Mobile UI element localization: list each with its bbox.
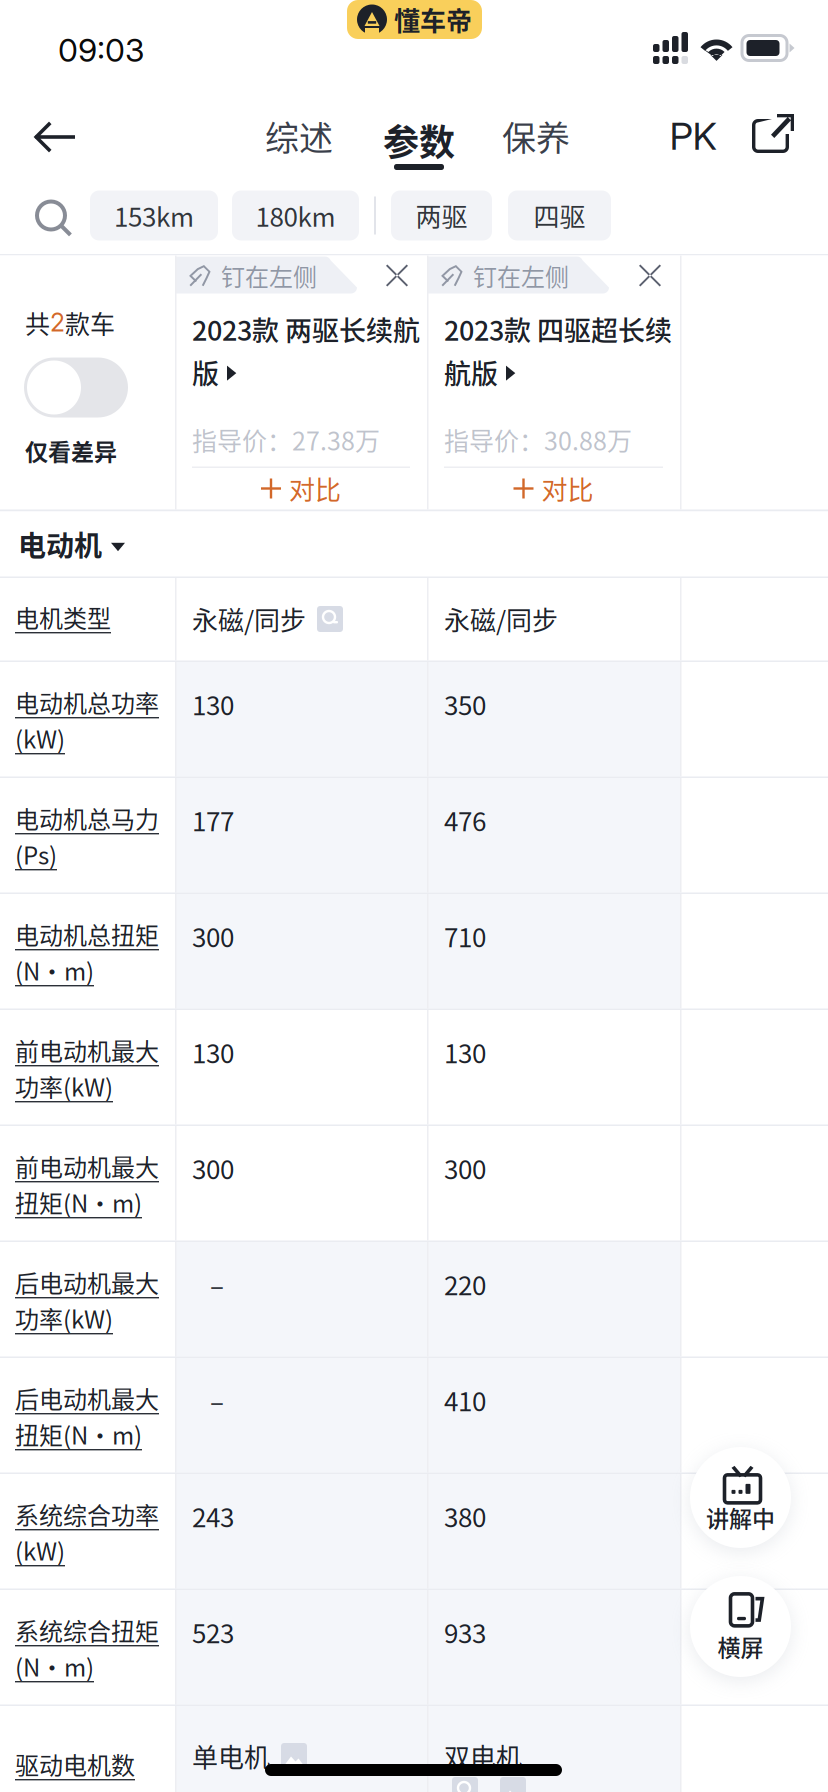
staticText: 476 xyxy=(444,801,486,839)
staticText: 钉在左侧 xyxy=(473,258,569,293)
staticText: 2 xyxy=(50,307,65,338)
staticText: 后电动机最大 xyxy=(15,1265,159,1299)
button[interactable]: 保养 xyxy=(486,95,586,177)
staticText: 243 xyxy=(192,1497,234,1535)
staticText: 驱动电机数 xyxy=(15,1747,135,1781)
staticText: 横屏 xyxy=(717,1630,763,1663)
staticText: 共 xyxy=(25,304,50,341)
staticText: 710 xyxy=(444,917,486,955)
staticText: 电动机总马力 xyxy=(15,801,159,835)
button[interactable]: 180km xyxy=(232,190,359,240)
staticText: 300 xyxy=(444,1149,486,1187)
button[interactable]: 四驱 xyxy=(508,190,611,240)
staticText: 扭矩(N·m) xyxy=(15,1185,142,1219)
staticText: 380 xyxy=(444,1497,486,1535)
staticText: 后电动机最大 xyxy=(15,1381,159,1415)
button[interactable]: 返回 xyxy=(9,96,101,178)
staticText: 仅看差异 xyxy=(25,434,117,467)
staticText: 前电动机最大 xyxy=(15,1149,159,1183)
button[interactable]: 横屏 xyxy=(690,1576,791,1677)
staticText: 双电机 xyxy=(444,1737,522,1775)
staticText: 功率(kW) xyxy=(15,1301,113,1335)
staticText: 钉在左侧 xyxy=(221,258,317,293)
button[interactable]: 移除该车型 xyxy=(628,255,672,295)
button[interactable]: 仅看差异 xyxy=(24,357,128,417)
button[interactable]: 参数 xyxy=(364,95,474,177)
staticText: 130 xyxy=(192,1033,234,1071)
staticText: 系统综合功率 xyxy=(15,1497,159,1531)
staticText: 410 xyxy=(444,1381,486,1419)
staticText: 单电机 xyxy=(192,1737,270,1775)
staticText: 180km xyxy=(255,197,335,234)
staticText: 300 xyxy=(192,1149,234,1187)
staticText: 讲解中 xyxy=(706,1501,775,1534)
staticText: 153km xyxy=(114,197,194,234)
staticText: (N·m) xyxy=(15,953,94,987)
staticText: – xyxy=(210,1381,224,1419)
button[interactable]: 讲解中 xyxy=(690,1447,791,1548)
staticText: 130 xyxy=(192,685,234,723)
staticText: 电动机总功率 xyxy=(15,685,159,719)
staticText: 永磁/同步 xyxy=(444,600,558,638)
staticText: 300 xyxy=(192,917,234,955)
staticText: (kW) xyxy=(15,721,65,755)
button[interactable]: 分享 xyxy=(730,95,812,177)
button[interactable]: 153km xyxy=(90,190,218,240)
staticText: 350 xyxy=(444,685,486,723)
staticText: 系统综合扭矩 xyxy=(15,1613,159,1647)
staticText: 懂车帝 xyxy=(394,1,472,38)
staticText: PK xyxy=(669,113,716,159)
staticText: (Ps) xyxy=(15,837,57,871)
staticText: 电机类型 xyxy=(15,600,111,634)
staticText: 2023款 四驱超长续 xyxy=(444,309,672,349)
staticText: 四驱 xyxy=(533,197,585,234)
staticText: 版 xyxy=(192,353,219,392)
staticText: 保养 xyxy=(502,111,570,161)
staticText: 130 xyxy=(444,1033,486,1071)
staticText: 933 xyxy=(444,1613,486,1651)
staticText: 177 xyxy=(192,801,234,839)
staticText: 永磁/同步 xyxy=(192,600,306,638)
staticText: 航版 xyxy=(444,353,498,392)
staticText: 前电动机最大 xyxy=(15,1033,159,1067)
staticText: 功率(kW) xyxy=(15,1069,113,1103)
staticText: 电动机总扭矩 xyxy=(15,917,159,951)
button[interactable]: 对比 xyxy=(427,467,680,509)
staticText: 两驱 xyxy=(415,197,467,234)
staticText: 款车 xyxy=(65,304,115,341)
staticText: 指导价：30.88万 xyxy=(444,421,632,458)
staticText: – xyxy=(210,1265,224,1303)
staticText: 综述 xyxy=(265,111,333,161)
button[interactable]: 综述 xyxy=(249,95,349,177)
staticText: 对比 xyxy=(541,470,593,507)
staticText: (N·m) xyxy=(15,1649,94,1683)
button[interactable]: 两驱 xyxy=(391,190,492,240)
staticText: (kW) xyxy=(15,1533,65,1567)
button[interactable]: 电动机 xyxy=(0,511,828,576)
button[interactable]: PK 对比 xyxy=(650,95,736,177)
staticText: 扭矩(N·m) xyxy=(15,1417,142,1451)
button[interactable]: 搜索 xyxy=(17,177,85,254)
button[interactable]: 移除该车型 xyxy=(375,255,419,295)
staticText: 09:03 xyxy=(58,31,144,69)
button[interactable]: 对比 xyxy=(175,467,427,509)
staticText: 电动机 xyxy=(18,524,102,564)
staticText: 220 xyxy=(444,1265,486,1303)
staticText: 2023款 两驱长续航 xyxy=(192,309,420,349)
staticText: 523 xyxy=(192,1613,234,1651)
staticText: 对比 xyxy=(289,470,341,507)
staticText: 参数 xyxy=(383,114,455,166)
staticText: 指导价：27.38万 xyxy=(192,421,380,458)
